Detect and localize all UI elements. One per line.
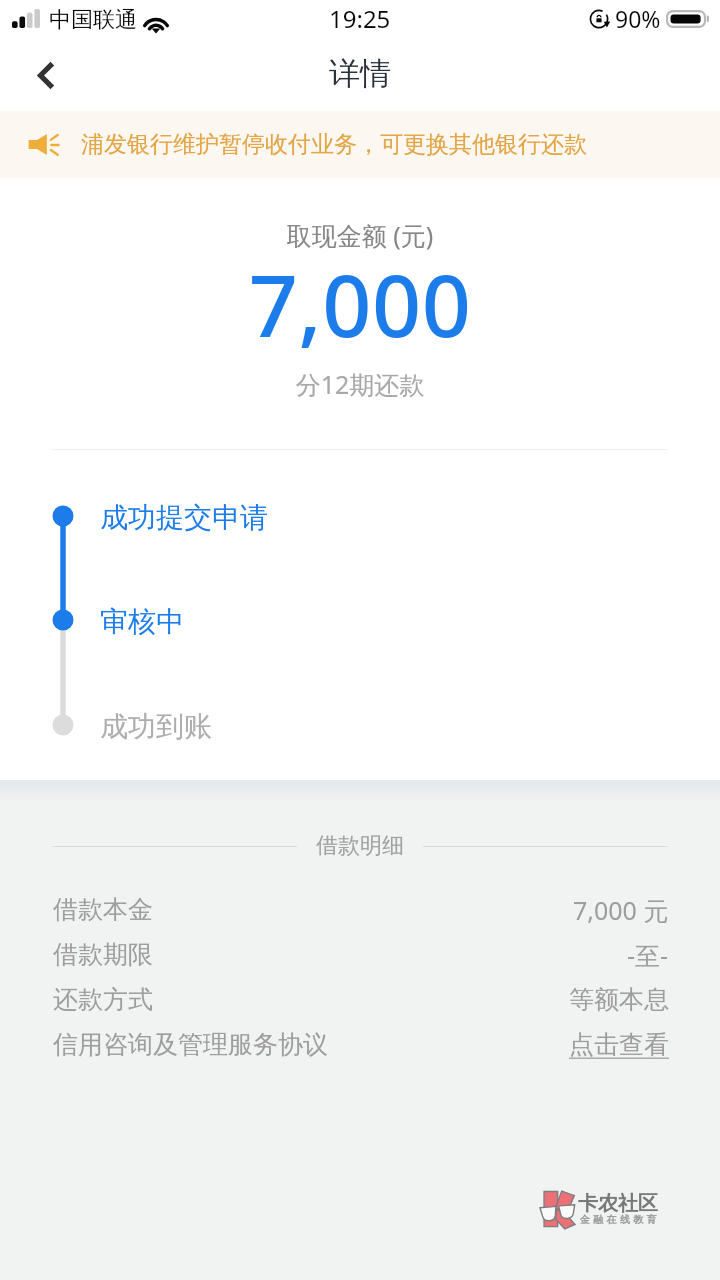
staticText: 等额本息 [569, 984, 669, 1015]
staticText: 还款方式 [53, 984, 153, 1015]
staticText: 借款明细 [316, 832, 404, 860]
staticText: 成功到账 [100, 709, 212, 744]
staticText: 审核中 [100, 604, 184, 639]
staticText: 卡农社区 [578, 1191, 658, 1216]
staticText: 浦发银行维护暂停收付业务，可更换其他银行还款 [81, 130, 587, 159]
staticText: 7,000 [0, 245, 720, 362]
button[interactable]: 还款方式 [0, 977, 720, 1022]
staticText: -至- [627, 938, 669, 972]
staticText: 取现金额 (元) [0, 218, 720, 252]
button[interactable]: 信用咨询及管理服务协议 [0, 1022, 720, 1067]
button[interactable]: 审核中 [100, 604, 184, 639]
staticText: 19:25 [329, 2, 391, 35]
staticText: 详情 [329, 54, 391, 93]
button[interactable]: 借款本金 [0, 887, 720, 932]
staticText: 90% [615, 3, 661, 34]
staticText: 借款期限 [53, 939, 153, 970]
staticText: 金融在线教育 [580, 1213, 660, 1226]
staticText: 信用咨询及管理服务协议 [53, 1029, 328, 1060]
button[interactable]: 浦发银行维护暂停收付业务，可更换其他银行还款 [0, 111, 720, 178]
staticText: 成功提交申请 [100, 500, 268, 535]
staticText: 分12期还款 [0, 367, 720, 401]
staticText: 7,000 元 [573, 893, 669, 927]
button[interactable]: 借款期限 [0, 932, 720, 977]
button[interactable]: 成功到账 [100, 709, 212, 744]
button[interactable]: 成功提交申请 [100, 500, 268, 535]
button[interactable]: Back [10, 40, 80, 111]
staticText: 点击查看 [569, 1029, 669, 1060]
staticText: 中国联通 [49, 6, 137, 34]
staticText: 借款本金 [53, 894, 153, 925]
